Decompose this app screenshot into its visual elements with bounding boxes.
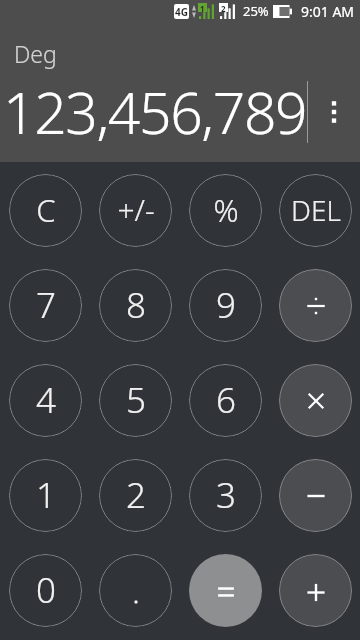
button[interactable]: 6 — [189, 364, 262, 437]
staticText: C — [36, 189, 56, 231]
button[interactable]: 3 — [189, 459, 262, 532]
staticText: 5 — [126, 376, 146, 424]
button[interactable]: 4 — [9, 364, 82, 437]
button[interactable]: 0 — [9, 554, 82, 627]
button[interactable]: 1 — [9, 459, 82, 532]
staticText: 9 — [216, 281, 236, 329]
staticText: Deg — [14, 38, 57, 69]
button[interactable]: Multiply — [279, 364, 352, 437]
button[interactable]: 8 — [99, 269, 172, 342]
button[interactable]: Divide — [279, 269, 352, 342]
staticText: 4G — [175, 5, 188, 19]
button[interactable]: Minus — [279, 459, 352, 532]
button[interactable]: Equals — [189, 554, 262, 627]
button[interactable]: Decimal point — [99, 554, 172, 627]
staticText: 9:01 AM — [301, 2, 355, 21]
button[interactable]: 7 — [9, 269, 82, 342]
staticText: +/- — [117, 189, 155, 230]
button[interactable]: DEL — [279, 174, 352, 247]
staticText: 2 — [126, 471, 146, 519]
staticText: 6 — [216, 376, 236, 424]
staticText: 1 — [36, 471, 56, 519]
staticText: 2 — [221, 3, 226, 12]
button[interactable]: 9 — [189, 269, 262, 342]
button[interactable]: 2 — [99, 459, 172, 532]
button[interactable]: Plus — [279, 554, 352, 627]
staticText: 0 — [36, 566, 56, 614]
staticText: DEL — [291, 191, 341, 229]
button[interactable]: More options — [319, 97, 349, 127]
button[interactable]: Percent — [189, 174, 262, 247]
button[interactable]: 5 — [99, 364, 172, 437]
staticText: 8 — [126, 281, 146, 329]
staticText: 3 — [216, 471, 236, 519]
staticText: % — [213, 189, 239, 231]
button[interactable]: Plus minus — [99, 174, 172, 247]
staticText: 123,456,789 — [3, 73, 307, 151]
button[interactable]: C — [9, 174, 82, 247]
staticText: 25% — [243, 2, 269, 20]
staticText: 7 — [36, 281, 56, 329]
staticText: 4 — [36, 376, 56, 424]
staticText: 1 — [200, 3, 205, 12]
